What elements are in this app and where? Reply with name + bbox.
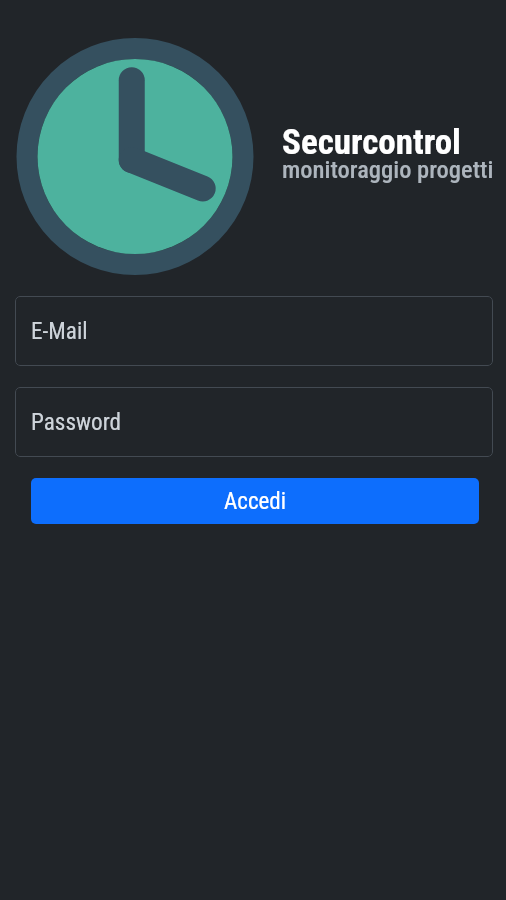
- staticText: monitoraggio progetti: [282, 155, 494, 184]
- button[interactable]: Password: [15, 387, 493, 457]
- staticText: Accedi: [224, 488, 286, 515]
- button[interactable]: Accedi: [31, 478, 479, 524]
- button[interactable]: E-Mail: [15, 296, 493, 366]
- staticText: Password: [31, 408, 122, 435]
- staticText: Securcontrol: [282, 122, 461, 163]
- staticText: E-Mail: [31, 317, 88, 344]
